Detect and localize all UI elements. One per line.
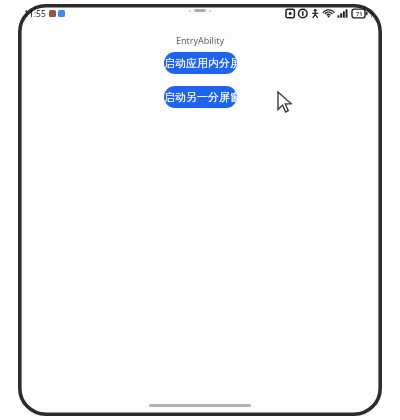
- button[interactable]: 启动另一分屏窗口: [164, 86, 237, 108]
- staticText: 启动另一分屏窗口: [164, 90, 237, 104]
- staticText: 启动应用内分屏: [164, 56, 237, 70]
- staticText: EntryAbility: [18, 34, 382, 46]
- staticText: 11:55: [24, 8, 46, 20]
- other: Status icons: [286, 8, 375, 19]
- staticText: 71: [356, 10, 363, 17]
- button[interactable]: 启动应用内分屏: [164, 52, 237, 74]
